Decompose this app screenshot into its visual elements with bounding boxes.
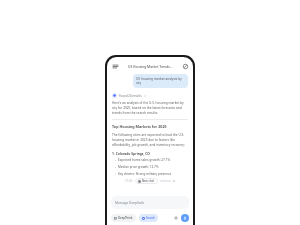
staticText: Top Housing Markets for 2025: [112, 124, 167, 129]
staticText: whatever: [160, 179, 172, 183]
button[interactable]: New chat: [135, 178, 158, 184]
staticText: New chat: [142, 179, 155, 183]
button[interactable]: Voice input: [181, 214, 189, 222]
staticText: Median price growth: 12.7%: [118, 165, 159, 169]
staticText: Search: [146, 216, 155, 220]
staticText: 77.4%: [125, 179, 133, 183]
staticText: Key drivers: Strong military presence: [118, 172, 172, 176]
staticText: Message DeepSeek: [115, 201, 145, 205]
button[interactable]: Message DeepSeek: [111, 196, 189, 209]
staticText: -: [115, 165, 116, 169]
staticText: US housing market analysis by city: [136, 77, 185, 85]
button[interactable]: Attach: [172, 214, 179, 221]
staticText: -: [115, 158, 116, 162]
staticText: -: [115, 172, 116, 176]
button[interactable]: Menu: [111, 62, 119, 70]
staticText: 1. Colorado Springs, CO: [112, 151, 150, 155]
button[interactable]: US housing market analysis by city: [133, 74, 188, 88]
staticText: The following cities are expected to lea…: [112, 133, 188, 147]
button[interactable]: DeepThink: [111, 214, 136, 222]
staticText: Found 24 results: [119, 94, 142, 98]
staticText: DeepThink: [118, 216, 133, 220]
staticText: Here's an analysis of the U.S. housing m…: [112, 101, 188, 115]
button[interactable]: New chat: [181, 62, 189, 70]
button[interactable]: Search: [139, 214, 158, 222]
staticText: US Housing Market Trends...: [128, 64, 173, 68]
staticText: Expected home sales growth: 27.1%: [118, 158, 171, 162]
